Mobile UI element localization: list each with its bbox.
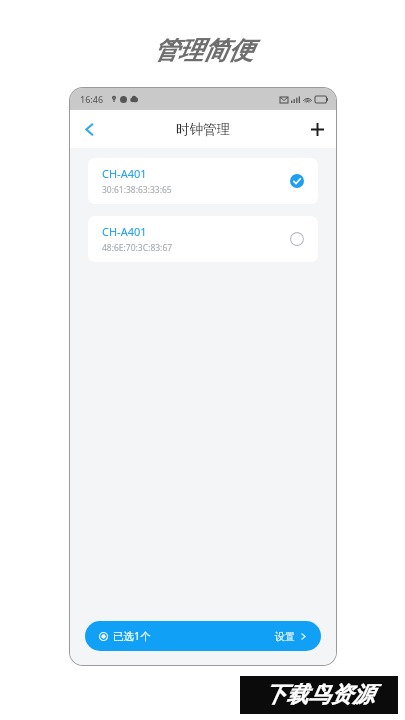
staticText: CH-A401 — [102, 166, 147, 181]
button[interactable]: Back — [70, 110, 108, 148]
button[interactable]: Add — [298, 110, 336, 148]
button[interactable]: CH-A401 — [88, 158, 318, 204]
button[interactable]: CH-A401 — [88, 216, 318, 262]
staticText: 48:6E:70:3C:83:67 — [102, 242, 173, 254]
staticText: 16:46 — [80, 93, 104, 105]
button[interactable]: 已选1个 — [85, 621, 321, 651]
staticText: CH-A401 — [102, 224, 147, 239]
staticText: 30:61:38:63:33:65 — [102, 184, 172, 196]
staticText: 时钟管理 — [176, 121, 230, 138]
staticText: 已选1个 — [113, 629, 151, 643]
staticText: 设置 — [275, 630, 295, 643]
staticText: 管理简便 — [153, 35, 253, 66]
staticText: 下载鸟资源 — [264, 681, 374, 709]
